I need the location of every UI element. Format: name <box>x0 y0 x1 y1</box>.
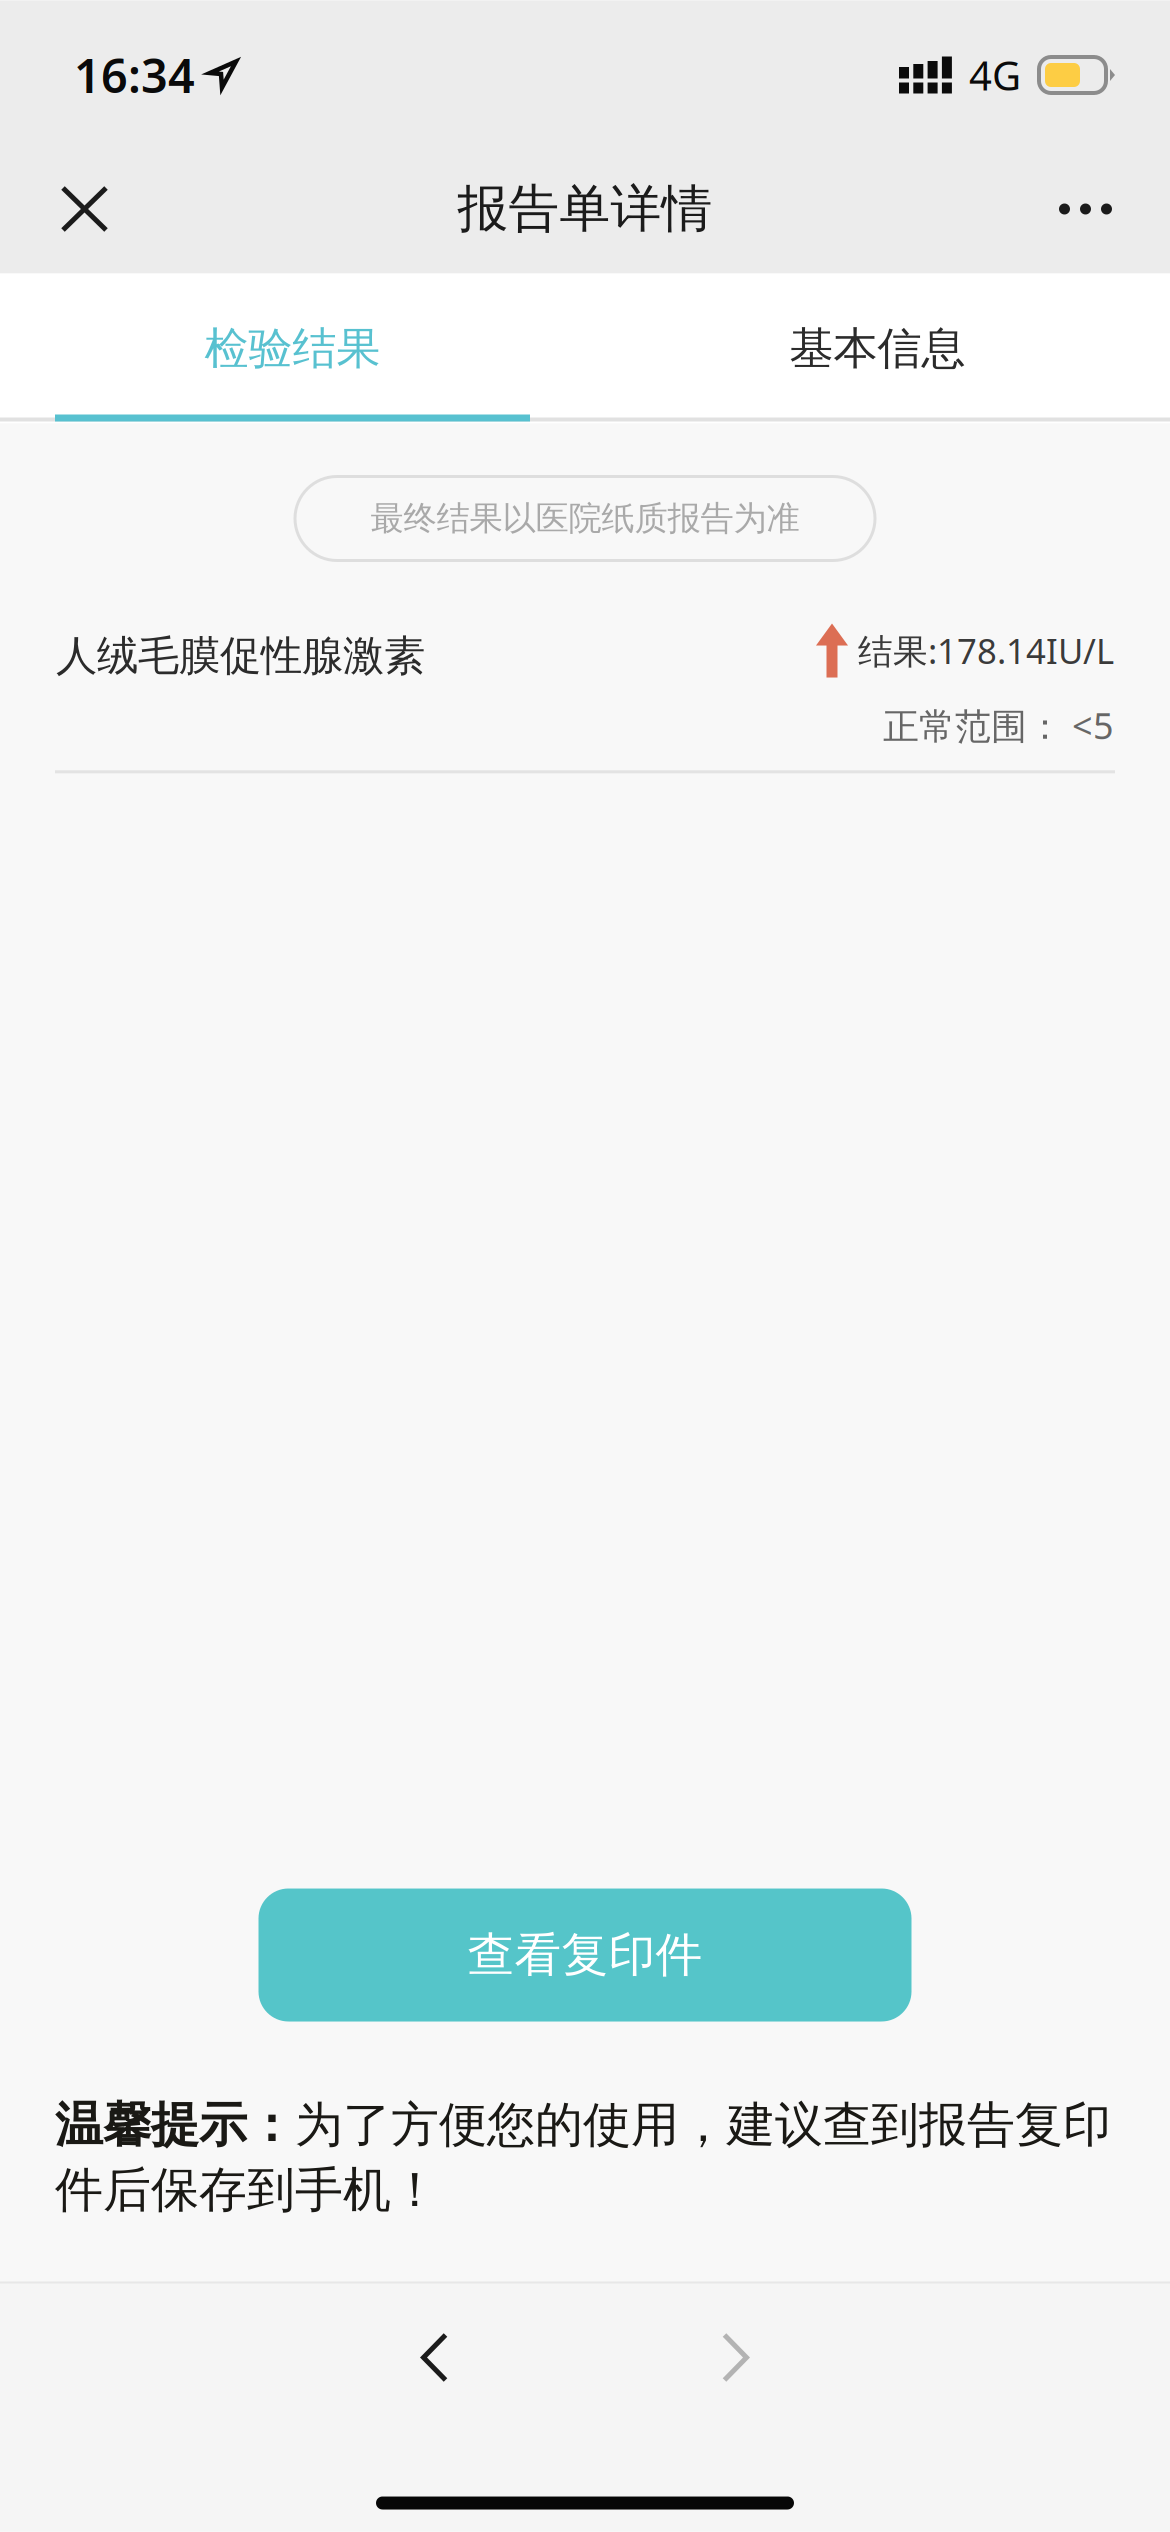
staticText: 4G <box>969 48 1021 101</box>
staticText: 16:34 <box>74 44 195 106</box>
staticText: 检验结果 <box>204 321 380 375</box>
button[interactable]: Close <box>0 156 146 262</box>
staticText: 人绒毛膜促性腺激素 <box>56 630 425 681</box>
staticText: 正常范围： <5 <box>883 701 1114 749</box>
button[interactable]: Back <box>381 2302 488 2412</box>
button[interactable]: Forward <box>682 2302 789 2412</box>
staticText: 最终结果以医院纸质报告为准 <box>370 498 799 539</box>
staticText: 温馨提示：为了方便您的使用，建议查到报告复印件后保存到手机！ <box>55 2095 1111 2219</box>
staticText: 报告单详情 <box>457 178 712 240</box>
staticText: 查看复印件 <box>467 1926 702 1984</box>
button[interactable]: 检验结果 <box>0 275 585 421</box>
staticText: 基本信息 <box>789 321 965 375</box>
button[interactable]: 基本信息 <box>585 275 1170 421</box>
button[interactable]: More <box>1019 156 1170 262</box>
button[interactable]: 查看复印件 <box>258 1888 911 2021</box>
staticText: 结果:178.14IU/L <box>858 627 1114 673</box>
